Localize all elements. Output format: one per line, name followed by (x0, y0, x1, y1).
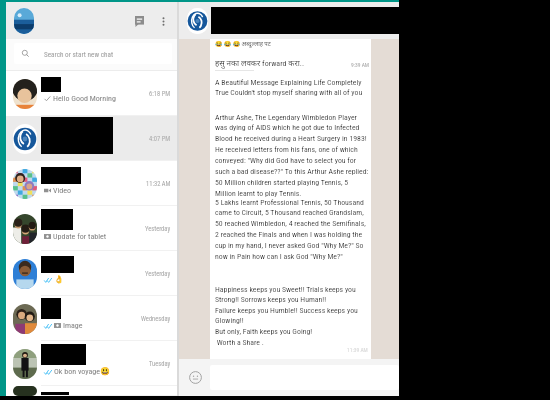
staticText: A Beautiful Message Explaining Life Comp… (215, 78, 370, 97)
button[interactable]: Profile (14, 8, 34, 34)
staticText: Video (53, 186, 72, 195)
button[interactable]: Contact profile (187, 8, 208, 34)
staticText: 11:32 AM (146, 180, 171, 188)
staticText: Update for tablet (53, 232, 107, 241)
staticText: 9:39 AM (351, 62, 370, 68)
staticText: Arthur Ashe, The Legendary Wimbledon Pla… (215, 113, 370, 198)
staticText: Yesterday (145, 270, 171, 278)
staticText: Happiness keeps you Sweet!! Trials keeps… (215, 285, 370, 304)
button[interactable]: Update for tablet (6, 206, 177, 251)
button[interactable] (6, 386, 177, 396)
staticText: Image (63, 321, 83, 330)
staticText: 😂 😂 😂 अब्दुल्लाह पट (215, 40, 271, 48)
staticText: 6:18 PM (149, 90, 171, 98)
button[interactable]: Hello Good Morning (6, 71, 177, 116)
staticText: Tuesday (149, 360, 171, 368)
staticText: हसु नका लवकर forward करा.. (215, 57, 305, 68)
button[interactable]: 4:07 PM (6, 116, 177, 161)
staticText: 11:39 AM (347, 347, 368, 353)
staticText: Wednesday (141, 315, 171, 323)
button[interactable]: New chat (131, 13, 147, 29)
button[interactable]: Video (6, 161, 177, 206)
button[interactable]: Search (22, 43, 172, 64)
staticText: 5 Lakhs learnt Professional Tennis, 50 T… (215, 198, 370, 261)
button[interactable]: 👌 (6, 251, 177, 296)
button[interactable]: Ok bon voyage😃 (6, 341, 177, 386)
staticText: Search or start new chat (44, 50, 114, 58)
staticText: 👌 (54, 275, 64, 284)
button[interactable]: Menu (155, 13, 171, 29)
staticText: 4:07 PM (149, 135, 171, 143)
staticText: Failure keeps you Humble!! Success keeps… (215, 306, 370, 325)
button[interactable]: Image (6, 296, 177, 341)
staticText: Hello Good Morning (53, 94, 116, 103)
staticText: Ok bon voyage😃 (54, 367, 111, 376)
button[interactable]: Emoji (189, 371, 202, 384)
staticText: Yesterday (145, 225, 171, 233)
staticText: Worth a Share . (215, 338, 264, 347)
staticText: But only, Faith keeps you Going! (215, 327, 313, 336)
